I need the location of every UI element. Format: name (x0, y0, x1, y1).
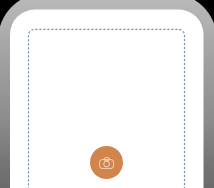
button[interactable]: Take photo (90, 146, 123, 179)
